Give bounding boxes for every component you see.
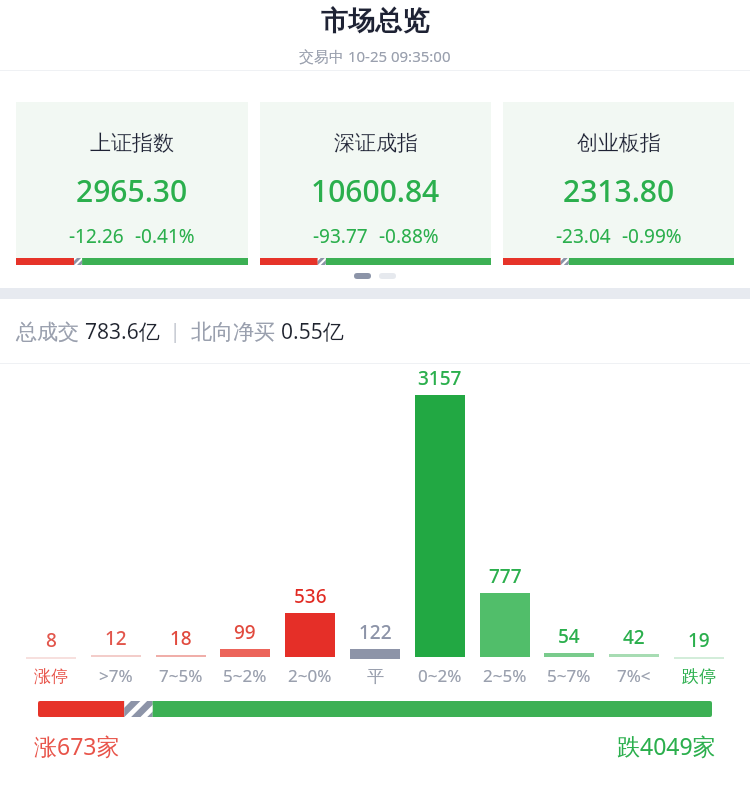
button[interactable]: 54	[544, 623, 594, 687]
staticText: 跌4049家	[617, 730, 716, 761]
staticText: 7~5%	[159, 664, 203, 687]
button[interactable]: 深证成指	[260, 102, 491, 265]
staticText: 交易中 10-25 09:35:00	[299, 46, 451, 66]
staticText: 总成交	[16, 317, 85, 346]
staticText: 18	[170, 625, 192, 651]
button[interactable]: 创业板指	[503, 102, 734, 265]
staticText: -0.99%	[622, 223, 682, 249]
button[interactable]: 19	[674, 627, 724, 687]
staticText: -12.26	[69, 223, 124, 249]
staticText: 777	[489, 563, 522, 589]
staticText: 创业板指	[577, 130, 661, 156]
staticText: 19	[688, 627, 710, 653]
staticText: 5~2%	[223, 664, 267, 687]
staticText: |	[160, 318, 191, 344]
button[interactable]: 42	[609, 624, 659, 687]
staticText: -23.04	[556, 223, 611, 249]
staticText: 54	[558, 623, 580, 649]
staticText: 2965.30	[76, 170, 188, 211]
staticText: 0.55亿	[281, 317, 344, 346]
button[interactable]: 122	[350, 619, 400, 687]
staticText: 42	[623, 624, 645, 650]
staticText: -0.88%	[379, 223, 439, 249]
staticText: 2313.80	[563, 170, 675, 211]
button[interactable]: 99	[220, 619, 270, 687]
button[interactable]: 18	[156, 625, 206, 687]
staticText: 8	[46, 627, 57, 653]
staticText: 2~0%	[288, 664, 332, 687]
staticText: 3157	[418, 365, 462, 391]
staticText: 122	[359, 619, 392, 645]
staticText: -0.41%	[135, 223, 195, 249]
staticText: >7%	[99, 664, 133, 687]
staticText: 0~2%	[418, 664, 462, 687]
staticText: 涨停	[34, 666, 68, 687]
button[interactable]: 3157	[415, 365, 465, 687]
button[interactable]: 总成交	[0, 299, 750, 363]
staticText: -93.77	[313, 223, 368, 249]
staticText: 涨673家	[34, 730, 120, 761]
staticText: 市场总览	[321, 4, 429, 38]
staticText: 上证指数	[90, 130, 174, 156]
button[interactable]: 12	[91, 625, 141, 687]
staticText: 跌停	[682, 666, 716, 687]
staticText: 平	[367, 666, 384, 687]
staticText: 12	[105, 625, 127, 651]
staticText: 99	[234, 619, 256, 645]
staticText: 10600.84	[311, 170, 440, 211]
button[interactable]: 8	[26, 627, 76, 687]
staticText: 5~7%	[547, 664, 591, 687]
button[interactable]: 536	[285, 583, 335, 687]
staticText: 783.6亿	[85, 317, 160, 346]
staticText: 536	[294, 583, 327, 609]
staticText: 深证成指	[334, 130, 418, 156]
button[interactable]: 上证指数	[16, 102, 248, 265]
staticText: 7%<	[617, 664, 651, 687]
staticText: 北向净买	[191, 317, 281, 346]
button[interactable]: 777	[480, 563, 530, 687]
staticText: 2~5%	[483, 664, 527, 687]
